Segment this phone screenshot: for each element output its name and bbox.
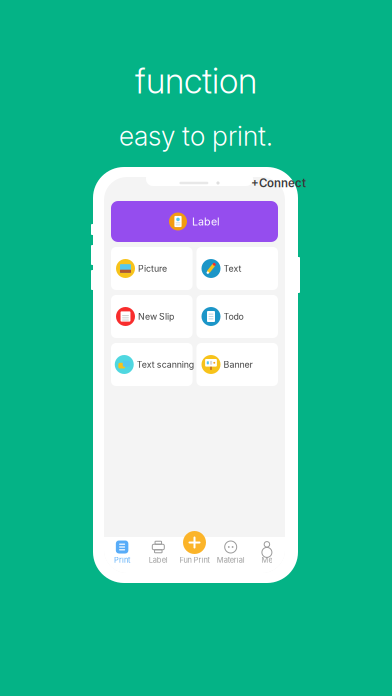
button[interactable]: Text scanning [111, 343, 192, 386]
staticText: Text scanning [137, 359, 194, 370]
button[interactable]: Print [104, 528, 140, 573]
button[interactable]: +Connect [251, 177, 311, 189]
staticText: function [135, 60, 257, 102]
staticText: easy to print. [119, 120, 273, 152]
button[interactable]: Todo [196, 295, 278, 338]
staticText: Text [223, 263, 241, 274]
button[interactable]: New Slip [111, 295, 192, 338]
button[interactable]: Picture [111, 247, 192, 290]
staticText: New Slip [138, 311, 174, 322]
staticText: Label [149, 555, 168, 564]
button[interactable]: Label [140, 528, 176, 573]
button[interactable]: Fun Print [176, 528, 213, 573]
staticText: Me [261, 555, 272, 564]
button[interactable]: Material [213, 528, 249, 573]
staticText: Banner [223, 359, 252, 370]
staticText: Print [114, 555, 130, 564]
staticText: Todo [223, 311, 243, 322]
button[interactable]: Banner [196, 343, 278, 386]
staticText: Fun Print [179, 555, 209, 564]
staticText: Label [192, 215, 220, 228]
staticText: Material [217, 555, 245, 564]
button[interactable]: Text [196, 247, 278, 290]
button[interactable]: Label [111, 201, 278, 242]
button[interactable]: Me [249, 528, 285, 573]
staticText: +Connect [251, 176, 306, 190]
staticText: Picture [138, 263, 167, 274]
